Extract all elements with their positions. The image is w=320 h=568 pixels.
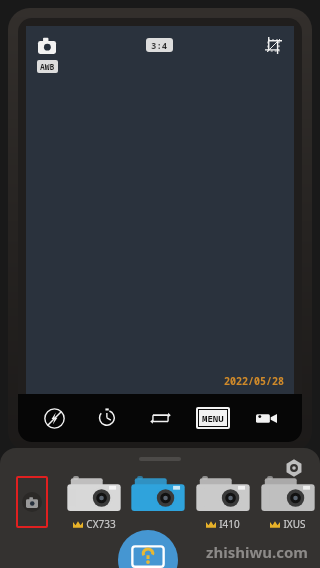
button[interactable]: Help <box>118 530 178 568</box>
button[interactable]: CX733 <box>62 476 126 531</box>
button[interactable]: All cameras <box>16 476 48 528</box>
staticText: 3:4 <box>151 39 168 51</box>
staticText: AWB <box>40 61 55 72</box>
button[interactable]: Flash off <box>37 401 71 435</box>
button[interactable]: AWB <box>40 61 55 72</box>
button[interactable] <box>126 476 190 517</box>
staticText: CX733 <box>86 517 116 531</box>
staticText: I410 <box>219 517 240 531</box>
staticText: MENU <box>202 412 224 424</box>
button[interactable]: Settings <box>282 456 306 480</box>
staticText: 2022/05/28 <box>224 374 284 388</box>
button[interactable]: IXUS <box>255 476 320 531</box>
button[interactable]: I410 <box>190 476 255 531</box>
button[interactable]: Self timer off <box>90 401 124 435</box>
button[interactable]: Shooting mode <box>36 34 58 56</box>
button[interactable]: 3:4 <box>151 39 168 51</box>
button[interactable]: MENU <box>198 409 228 427</box>
staticText: IXUS <box>283 517 306 531</box>
button[interactable]: Switch camera <box>143 401 177 435</box>
staticText: zhishiwu.com <box>206 542 308 562</box>
button[interactable]: Video mode <box>249 401 283 435</box>
button[interactable]: Framing grid <box>262 34 284 56</box>
